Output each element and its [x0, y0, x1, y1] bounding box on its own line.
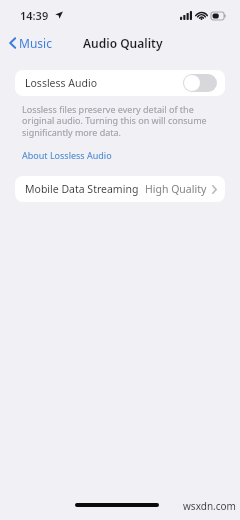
staticText: Lossless files preserve every detail of …: [22, 103, 218, 139]
staticText: Mobile Data Streaming: [25, 182, 139, 196]
button[interactable]: Music: [0, 32, 58, 54]
button[interactable]: Lossless Audio toggle, off: [183, 74, 217, 92]
button[interactable]: About Lossless Audio: [18, 148, 116, 162]
staticText: Audio Quality: [83, 35, 163, 51]
staticText: High Quality: [145, 182, 207, 196]
staticText: wsxdn.com: [183, 499, 236, 513]
staticText: Music: [19, 35, 52, 51]
button[interactable]: Mobile Data Streaming: [15, 176, 225, 202]
staticText: Lossless Audio: [25, 76, 98, 90]
staticText: About Lossless Audio: [22, 149, 112, 161]
button[interactable]: Lossless Audio: [15, 70, 225, 96]
staticText: 14:39: [20, 8, 49, 23]
